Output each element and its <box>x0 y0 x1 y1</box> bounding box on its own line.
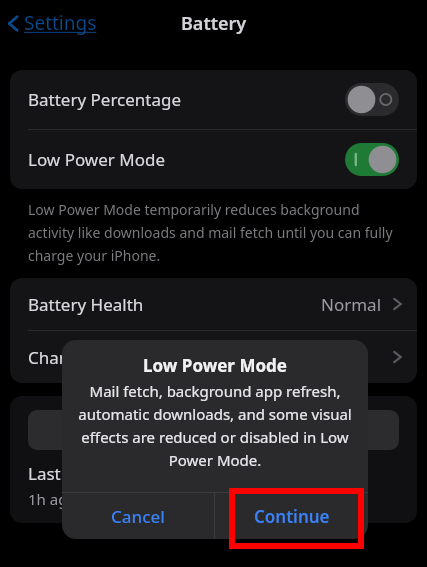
staticText: Low Power Mode <box>62 354 368 377</box>
staticText: 1h ago <box>28 489 77 509</box>
button[interactable]: Switch off <box>345 83 399 116</box>
staticText: Mail fetch, background app refresh, auto… <box>70 381 360 470</box>
button[interactable]: Settings <box>2 7 101 39</box>
staticText: Battery Percentage <box>28 88 182 111</box>
staticText: Cancel <box>111 505 165 528</box>
staticText: Settings <box>24 10 97 36</box>
button[interactable]: Low Power Mode <box>10 130 417 189</box>
staticText: Low Power Mode <box>28 148 166 171</box>
staticText: Normal <box>321 293 382 316</box>
staticText: Last Charged to <box>28 462 155 485</box>
staticText: Battery Health <box>28 293 144 316</box>
button[interactable]: Battery Health <box>10 278 417 330</box>
staticText: Low Power Mode temporarily reduces backg… <box>28 200 399 265</box>
button[interactable]: Continue <box>215 493 368 539</box>
staticText: Charging <box>28 346 102 369</box>
button[interactable]: Charging <box>10 331 417 383</box>
button[interactable]: Cancel <box>62 493 214 539</box>
staticText: Continue <box>254 505 330 528</box>
button[interactable]: Switch on <box>345 143 399 176</box>
button[interactable] <box>28 410 399 450</box>
staticText: Battery <box>181 11 247 36</box>
button[interactable]: Battery Percentage <box>10 70 417 129</box>
